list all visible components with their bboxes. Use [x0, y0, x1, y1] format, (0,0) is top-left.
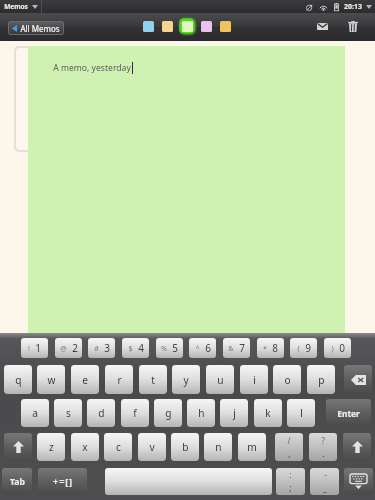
staticText: A memo, yesterday — [53, 62, 131, 74]
staticText: c — [116, 440, 121, 454]
staticText: 4 — [138, 341, 144, 355]
button[interactable]: s — [54, 399, 82, 427]
staticText: # — [94, 343, 99, 353]
button[interactable]: Memos — [4, 2, 38, 11]
staticText: 2 — [72, 341, 78, 355]
staticText: v — [149, 440, 155, 454]
staticText: m — [247, 440, 257, 454]
staticText: 7 — [239, 341, 245, 355]
button[interactable]: @ — [55, 338, 82, 358]
staticText: y — [183, 373, 189, 387]
button[interactable]: Mail memo — [311, 19, 333, 33]
button[interactable]: p — [307, 365, 335, 394]
staticText: +=[] — [53, 475, 73, 488]
button[interactable]: i — [240, 365, 268, 394]
button[interactable]: Green paper — [177, 16, 197, 36]
staticText: n — [215, 440, 222, 454]
button[interactable]: m — [238, 433, 266, 461]
button[interactable]: +=[] — [38, 468, 87, 495]
button[interactable]: ? — [309, 433, 337, 461]
button[interactable]: Space — [105, 468, 272, 495]
button[interactable]: a — [21, 399, 49, 427]
staticText: ^ — [195, 343, 200, 353]
button[interactable]: Delete memo — [342, 17, 364, 35]
staticText: k — [265, 406, 271, 420]
staticText: o — [284, 373, 291, 387]
staticText: _ — [323, 482, 327, 494]
button[interactable]: Pink paper — [201, 21, 212, 32]
button[interactable]: r — [105, 365, 133, 394]
staticText: 5 — [172, 341, 178, 355]
staticText: ; — [289, 482, 292, 494]
button[interactable]: l — [287, 399, 315, 427]
button[interactable]: x — [71, 433, 99, 461]
staticText: 9 — [305, 341, 311, 355]
staticText: ) — [331, 343, 334, 353]
button[interactable]: e — [71, 365, 99, 394]
button[interactable]: h — [187, 399, 215, 427]
button[interactable]: k — [254, 399, 282, 427]
button[interactable]: Backspace — [344, 365, 372, 394]
button[interactable]: ( — [290, 338, 317, 358]
button[interactable]: n — [204, 433, 232, 461]
button[interactable]: q — [4, 365, 32, 394]
button[interactable]: t — [139, 365, 167, 394]
staticText: 1 — [35, 341, 41, 355]
staticText: x — [82, 440, 88, 454]
staticText: Memos — [4, 2, 28, 11]
button[interactable]: g — [154, 399, 182, 427]
button[interactable]: w — [37, 365, 65, 394]
button[interactable]: Blue paper — [143, 21, 154, 32]
button[interactable]: A memo, yesterday — [28, 46, 345, 334]
button[interactable]: Tan paper — [162, 21, 173, 32]
button[interactable]: & — [223, 338, 250, 358]
staticText: , — [288, 448, 291, 460]
staticText: q — [15, 373, 22, 387]
button[interactable]: z — [37, 433, 65, 461]
staticText: / — [287, 435, 291, 447]
button[interactable]: Shift — [4, 433, 32, 461]
staticText: % — [161, 343, 167, 353]
staticText: f — [133, 406, 137, 420]
button[interactable]: Gold paper — [220, 21, 231, 32]
button[interactable]: Hide keyboard — [344, 468, 373, 495]
staticText: @ — [60, 343, 67, 353]
staticText: a — [32, 406, 38, 420]
button[interactable]: o — [273, 365, 301, 394]
button[interactable]: # — [88, 338, 115, 358]
button[interactable]: y — [172, 365, 200, 394]
button[interactable]: Enter — [326, 399, 371, 427]
button[interactable]: Tab — [2, 468, 32, 495]
button[interactable]: % — [156, 338, 183, 358]
button[interactable]: j — [220, 399, 248, 427]
button[interactable]: b — [171, 433, 199, 461]
staticText: 0 — [339, 341, 345, 355]
button[interactable]: ) — [324, 338, 351, 358]
button[interactable]: f — [121, 399, 149, 427]
staticText: b — [182, 440, 189, 454]
button[interactable]: * — [257, 338, 284, 358]
button[interactable]: / — [275, 433, 303, 461]
staticText: ( — [297, 343, 300, 353]
staticText: 20:13 — [344, 2, 362, 12]
button[interactable]: v — [138, 433, 166, 461]
button[interactable]: u — [206, 365, 234, 394]
button[interactable]: Shift — [343, 433, 371, 461]
button[interactable]: d — [87, 399, 115, 427]
button[interactable]: ^ — [189, 338, 216, 358]
button[interactable]: : — [276, 468, 305, 495]
staticText: r — [117, 373, 122, 387]
staticText: All Memos — [20, 23, 60, 34]
staticText: & — [228, 343, 234, 353]
button[interactable]: ! — [21, 338, 48, 358]
staticText: p — [318, 373, 325, 387]
staticText: u — [217, 373, 224, 387]
button[interactable]: $ — [122, 338, 149, 358]
staticText: Enter — [337, 408, 360, 419]
staticText: w — [47, 373, 56, 387]
button[interactable]: - — [310, 468, 339, 495]
staticText: t — [151, 373, 155, 387]
staticText: l — [300, 406, 303, 420]
button[interactable]: c — [104, 433, 132, 461]
button[interactable]: All Memos — [9, 22, 63, 34]
